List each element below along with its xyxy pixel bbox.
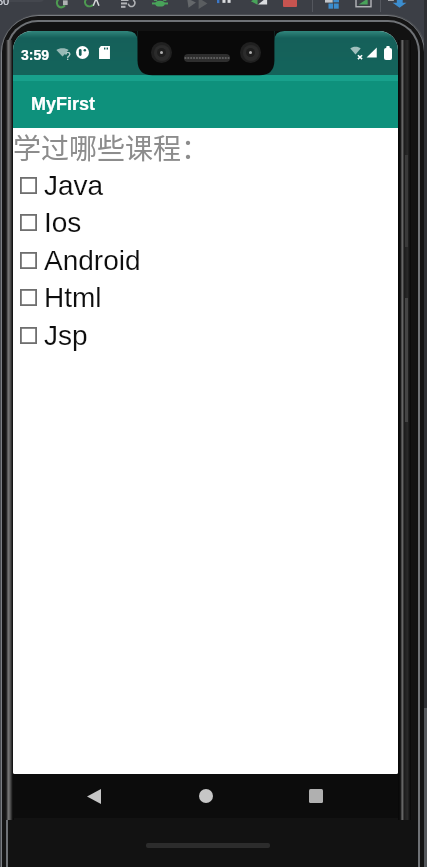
staticText: Jsp xyxy=(44,320,88,351)
staticText: Java xyxy=(44,170,104,201)
staticText: Ios xyxy=(44,207,82,238)
staticText: ? xyxy=(65,51,71,62)
button[interactable]: Home xyxy=(176,774,236,818)
staticText: 3:59 xyxy=(21,47,50,63)
staticText: Android xyxy=(44,245,141,276)
button[interactable]: Ios xyxy=(13,204,398,241)
staticText: Html xyxy=(44,282,102,313)
button[interactable]: Java xyxy=(13,167,398,204)
staticText: 学过哪些课程： xyxy=(13,127,210,168)
button[interactable]: Android xyxy=(13,242,398,279)
button[interactable]: Html xyxy=(13,279,398,316)
staticText: 30 xyxy=(0,0,10,7)
button[interactable]: Jsp xyxy=(13,317,398,354)
staticText: MyFirst xyxy=(31,94,96,114)
button[interactable]: Back xyxy=(64,774,124,818)
button[interactable]: Recent apps xyxy=(286,774,346,818)
